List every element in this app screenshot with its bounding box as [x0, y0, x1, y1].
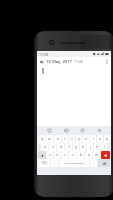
staticText: v [72, 153, 74, 157]
button[interactable]: , [51, 159, 58, 167]
button[interactable]: i [90, 135, 96, 143]
staticText: u [85, 137, 87, 141]
button[interactable]: s [49, 143, 56, 151]
button[interactable]: x [54, 151, 60, 159]
button[interactable]: Space [59, 159, 89, 167]
staticText: k [96, 145, 98, 149]
staticText: w [48, 137, 51, 141]
button[interactable]: h [80, 143, 86, 151]
staticText: . [93, 161, 94, 165]
button[interactable]: g [73, 143, 79, 151]
staticText: t [71, 137, 73, 141]
button[interactable]: More options [102, 57, 111, 66]
staticText: f [68, 145, 70, 149]
button[interactable]: p [104, 135, 110, 143]
staticText: 11:30 [39, 52, 48, 57]
button[interactable]: r [62, 135, 68, 143]
button[interactable]: f [65, 143, 72, 151]
button[interactable]: a [41, 143, 48, 151]
staticText: y [78, 137, 80, 141]
button[interactable]: w [46, 135, 53, 143]
button[interactable]: Back [37, 57, 46, 66]
staticText: c [64, 153, 66, 157]
button[interactable]: v [69, 151, 76, 159]
button[interactable]: k [94, 143, 100, 151]
staticText: a [44, 145, 46, 149]
staticText: s [52, 145, 54, 149]
staticText: i [93, 137, 94, 141]
button[interactable]: o [97, 135, 103, 143]
staticText: r [64, 137, 66, 141]
staticText: z [49, 153, 51, 157]
staticText: 16 May, 2017 [46, 59, 72, 65]
button[interactable]: c [61, 151, 68, 159]
staticText: ?123 [41, 161, 47, 165]
button[interactable]: z [47, 151, 53, 159]
staticText: x [56, 153, 58, 157]
button[interactable]: y [76, 135, 82, 143]
staticText: b [80, 153, 82, 157]
button[interactable]: b [77, 151, 84, 159]
staticText: g [75, 145, 77, 149]
button[interactable]: l [101, 143, 107, 151]
staticText: p [106, 137, 108, 141]
staticText: j [90, 145, 91, 149]
staticText: m [95, 153, 98, 157]
staticText: n [88, 153, 90, 157]
staticText: l [104, 145, 105, 149]
button[interactable]: n [85, 151, 92, 159]
button[interactable]: GIF [61, 126, 71, 135]
button[interactable]: Backspace [101, 151, 110, 159]
button[interactable]: ?123 [38, 159, 50, 167]
button[interactable]: d [57, 143, 64, 151]
staticText: e [57, 137, 59, 141]
button[interactable]: j [87, 143, 93, 151]
button[interactable]: t [69, 135, 75, 143]
button[interactable]: m [93, 151, 100, 159]
staticText: h [82, 145, 84, 149]
button[interactable]: q [38, 135, 45, 143]
button[interactable]: e [54, 135, 61, 143]
staticText: o [99, 137, 101, 141]
button[interactable]: Settings [94, 126, 104, 135]
button[interactable]: Emoji [77, 126, 87, 135]
button[interactable] [37, 66, 111, 126]
button[interactable]: Shift [38, 151, 46, 159]
button[interactable]: Enter [98, 159, 110, 167]
button[interactable]: Stickers [44, 126, 54, 135]
button[interactable]: u [83, 135, 89, 143]
staticText: d [60, 145, 62, 149]
staticText: q [41, 137, 43, 141]
staticText: 11:30 [74, 59, 83, 64]
staticText: , [54, 161, 55, 165]
